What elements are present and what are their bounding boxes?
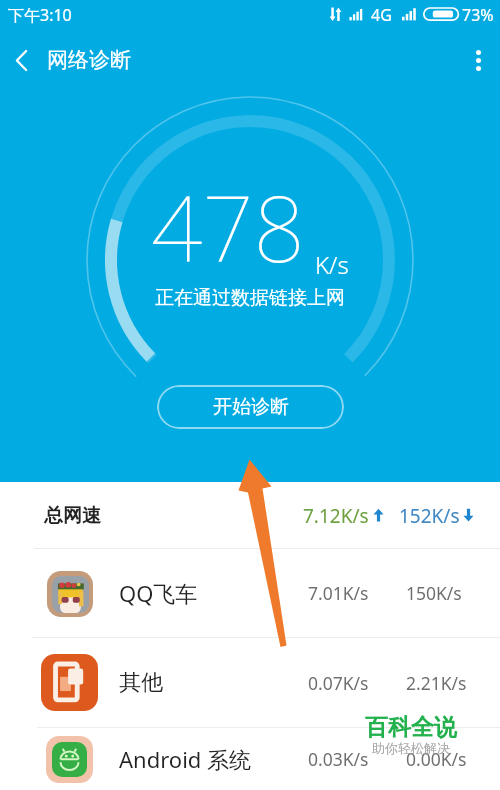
staticText: 开始诊断 [213, 395, 289, 419]
button[interactable]: Android 系统 [0, 728, 500, 790]
staticText: 4G [371, 4, 392, 26]
staticText: 7.12K/s [303, 503, 369, 529]
staticText: 73% [462, 4, 494, 26]
staticText: 下午3:10 [8, 4, 72, 26]
staticText: 0.00K/s [406, 747, 467, 771]
staticText: QQ飞车 [119, 578, 198, 608]
button[interactable]: 其他 [0, 638, 500, 727]
button[interactable]: 总网速 [0, 482, 500, 548]
staticText: 478 [151, 166, 305, 289]
staticText: 正在通过数据链接上网 [155, 286, 345, 310]
staticText: 总网速 [44, 504, 101, 528]
button[interactable]: 开始诊断 [157, 385, 344, 429]
staticText: 0.03K/s [308, 747, 369, 771]
button[interactable]: More options [456, 36, 500, 84]
staticText: 150K/s [406, 581, 462, 605]
button[interactable]: QQ飞车 [0, 549, 500, 637]
staticText: K/s [315, 248, 349, 281]
staticText: 助你轻松解决 [372, 740, 450, 756]
staticText: 2.21K/s [406, 671, 467, 695]
staticText: 百科全说 [365, 713, 457, 742]
button[interactable]: Back [0, 36, 42, 84]
staticText: 网络诊断 [47, 47, 131, 73]
staticText: Android 系统 [119, 744, 252, 774]
staticText: 7.01K/s [308, 581, 369, 605]
staticText: 其他 [119, 669, 163, 697]
staticText: 0.07K/s [308, 671, 369, 695]
staticText: 152K/s [399, 503, 460, 529]
